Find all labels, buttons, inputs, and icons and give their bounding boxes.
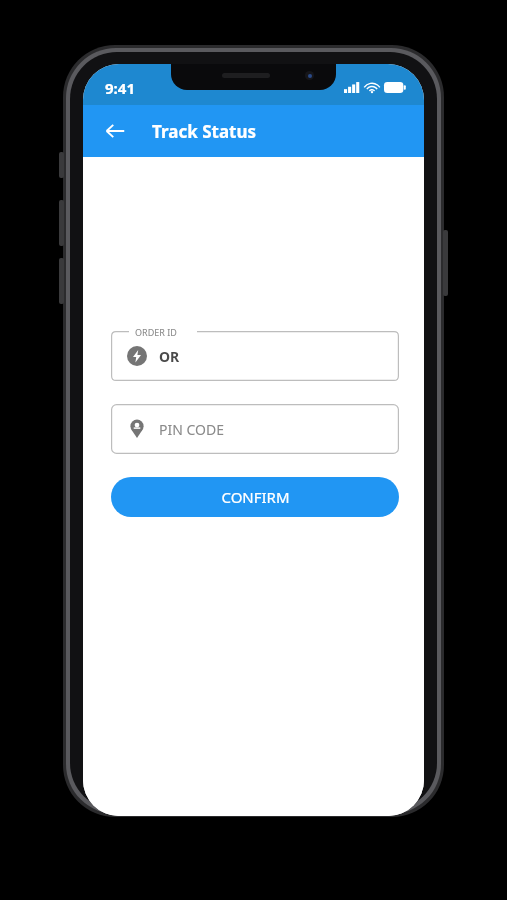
staticText: Track Status (152, 120, 257, 143)
staticText: 9:41 (105, 78, 135, 98)
button[interactable]: ORDER ID (111, 331, 399, 381)
button[interactable]: CONFIRM (111, 477, 399, 517)
staticText: CONFIRM (221, 487, 290, 507)
staticText: PIN CODE (159, 420, 225, 439)
button[interactable]: PIN CODE (111, 404, 399, 454)
button[interactable]: Back (95, 111, 135, 151)
staticText: ORDER ID (135, 326, 177, 338)
staticText: OR (159, 347, 180, 366)
